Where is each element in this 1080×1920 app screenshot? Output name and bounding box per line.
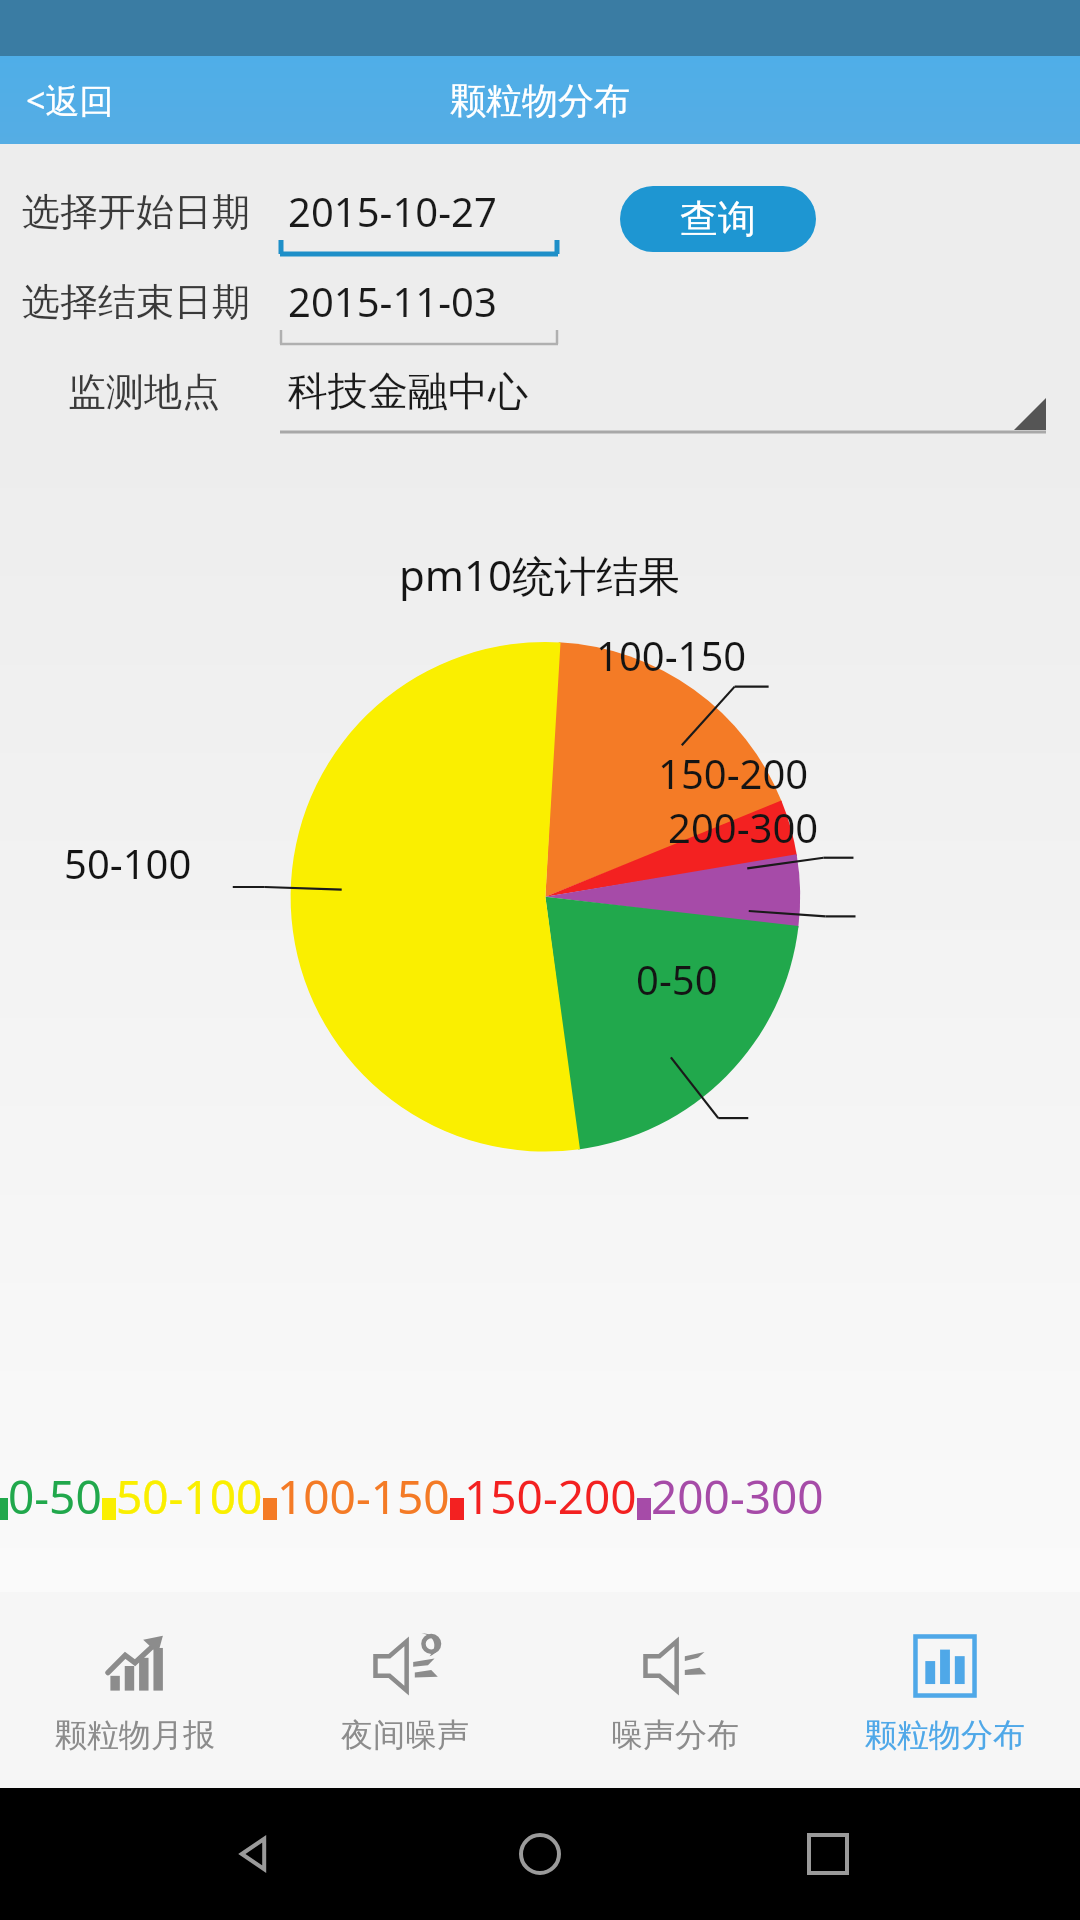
staticText: 监测地点 <box>68 368 220 416</box>
button[interactable]: 噪声分布 <box>540 1592 810 1788</box>
button[interactable]: 2015-11-03 <box>280 274 558 360</box>
staticText: 200-300 <box>668 800 819 854</box>
staticText: 颗粒物分布 <box>450 78 630 123</box>
button[interactable]: <返回 <box>0 69 132 131</box>
staticText: 150-200 <box>658 746 809 800</box>
staticText: 50-100 <box>64 836 192 890</box>
staticText: 100-150 <box>596 628 747 682</box>
staticText: 50-100 <box>116 1465 263 1528</box>
button[interactable]: 颗粒物月报 <box>0 1592 270 1788</box>
staticText: 噪声分布 <box>611 1715 739 1755</box>
staticText: 2015-10-27 <box>288 184 497 238</box>
button[interactable]: Recents <box>793 1819 863 1889</box>
button[interactable]: 2015-10-27 <box>280 184 558 270</box>
staticText: 150-200 <box>464 1465 637 1528</box>
button[interactable]: Home <box>505 1819 575 1889</box>
staticText: pm10统计结果 <box>399 546 681 603</box>
staticText: 0-50 <box>8 1465 102 1528</box>
staticText: 选择结束日期 <box>22 278 250 326</box>
button[interactable]: 查询 <box>620 186 816 252</box>
staticText: 查询 <box>680 195 756 243</box>
staticText: 颗粒物分布 <box>865 1715 1025 1755</box>
button[interactable]: 夜间噪声 <box>270 1592 540 1788</box>
staticText: 颗粒物月报 <box>55 1715 215 1755</box>
staticText: 100-150 <box>277 1465 450 1528</box>
staticText: 选择开始日期 <box>22 188 250 236</box>
staticText: 0-50 <box>636 952 718 1006</box>
button[interactable]: 监测地点 <box>0 366 1080 444</box>
staticText: 2015-11-03 <box>288 274 497 328</box>
button[interactable]: 颗粒物分布 <box>810 1592 1080 1788</box>
staticText: 科技金融中心 <box>288 366 528 416</box>
staticText: 夜间噪声 <box>341 1715 469 1755</box>
staticText: <返回 <box>26 77 114 123</box>
button[interactable]: Back <box>218 1819 288 1889</box>
staticText: 200-300 <box>651 1465 824 1528</box>
